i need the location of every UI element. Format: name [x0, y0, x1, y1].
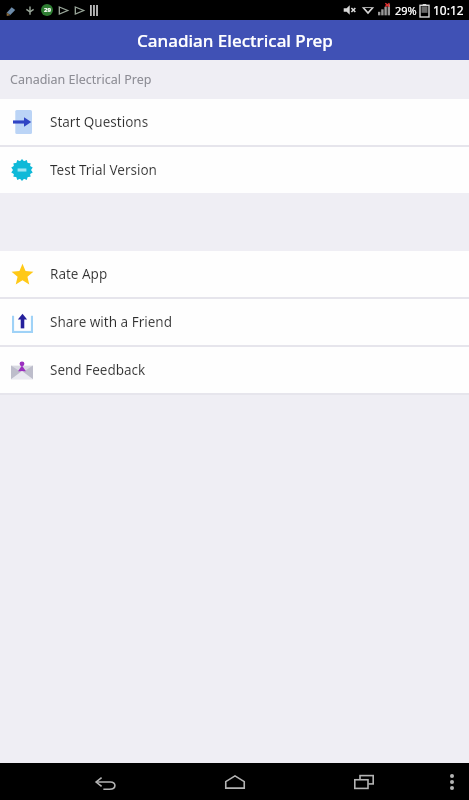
other: Share with a Friend	[12, 312, 33, 333]
button[interactable]: Start Questions	[0, 99, 469, 145]
staticText: Test Trial Version	[50, 161, 157, 179]
button[interactable]: Back	[82, 763, 130, 800]
other: Rate App	[11, 263, 34, 286]
button[interactable]: Send Feedback	[0, 347, 469, 393]
other: Test Trial Version	[11, 159, 33, 181]
staticText: Canadian Electrical Prep	[10, 71, 152, 88]
button[interactable]: Home	[211, 763, 259, 800]
staticText: Share with a Friend	[50, 313, 172, 331]
button[interactable]: Recent apps	[340, 763, 388, 800]
staticText: 10:12	[433, 2, 464, 18]
staticText: Send Feedback	[50, 361, 146, 379]
staticText: 29	[44, 6, 51, 14]
staticText: 29%	[395, 3, 417, 18]
staticText: Rate App	[50, 265, 108, 283]
button[interactable]: Rate App	[0, 251, 469, 297]
other: Start Questions	[13, 110, 32, 134]
staticText: Start Questions	[50, 113, 149, 131]
button[interactable]: More options	[435, 765, 469, 799]
button[interactable]: Test Trial Version	[0, 147, 469, 193]
button[interactable]: Share with a Friend	[0, 299, 469, 345]
other: Send Feedback	[11, 359, 33, 381]
staticText: Canadian Electrical Prep	[137, 29, 333, 52]
